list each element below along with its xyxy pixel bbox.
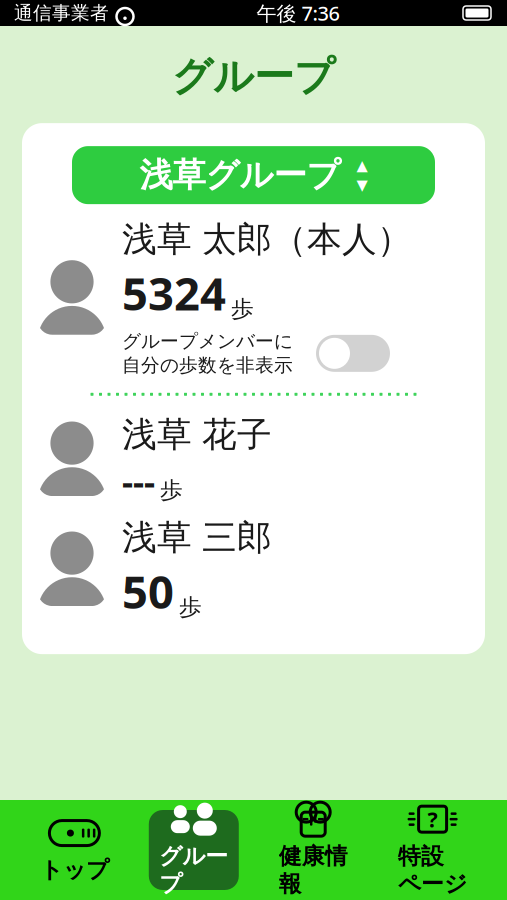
staticText: グループメンバーに xyxy=(122,330,293,353)
button[interactable]: トップ xyxy=(29,810,119,890)
staticText: 歩 xyxy=(160,476,183,504)
staticText: 歩 xyxy=(231,295,254,323)
button[interactable]: 自分の歩数を非表示 xyxy=(316,335,390,372)
staticText: ▼ xyxy=(356,177,367,193)
staticText: 健康情報 xyxy=(279,842,348,898)
button[interactable]: 浅草グループ xyxy=(72,146,435,204)
button[interactable]: ? xyxy=(388,810,478,890)
staticText: 50 xyxy=(122,561,174,621)
staticText: 午後 7:36 xyxy=(256,0,339,26)
staticText: 浅草グループ xyxy=(139,155,340,196)
staticText: 通信事業者 xyxy=(14,1,109,24)
button[interactable]: グループ xyxy=(149,810,239,890)
staticText: 浅草 三郎 xyxy=(122,516,272,559)
staticText: 浅草 太郎（本人） xyxy=(122,218,412,261)
staticText: 自分の歩数を非表示 xyxy=(122,354,293,377)
staticText: 特設ページ xyxy=(398,842,467,898)
staticText: 5324 xyxy=(122,263,226,323)
staticText: ▲ xyxy=(356,157,367,174)
staticText: グループ xyxy=(159,842,228,898)
staticText: グループ xyxy=(172,52,335,101)
staticText: 浅草 花子 xyxy=(122,413,272,456)
button[interactable]: 健康情報 xyxy=(268,810,358,890)
staticText: ? xyxy=(428,805,438,833)
staticText: トップ xyxy=(40,856,109,884)
staticText xyxy=(109,0,115,28)
staticText: 歩 xyxy=(179,593,202,621)
staticText: --- xyxy=(122,458,155,504)
